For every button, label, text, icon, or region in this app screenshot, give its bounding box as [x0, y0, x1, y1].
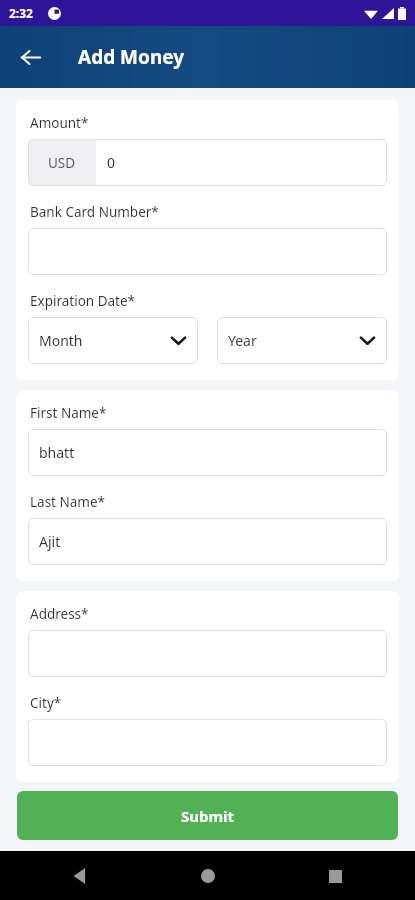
- button[interactable]: Submit: [17, 791, 398, 840]
- staticText: Add Money: [78, 44, 185, 70]
- button[interactable]: USD: [28, 139, 387, 186]
- button[interactable]: [28, 719, 387, 766]
- staticText: Last Name*: [30, 493, 106, 511]
- button[interactable]: bhatt: [28, 429, 387, 476]
- staticText: Amount*: [30, 114, 89, 132]
- staticText: USD: [48, 154, 76, 172]
- staticText: Expiration Date*: [30, 292, 136, 310]
- button[interactable]: Year: [217, 317, 387, 364]
- staticText: bhatt: [39, 443, 75, 462]
- staticText: City*: [30, 694, 62, 712]
- staticText: Ajit: [39, 532, 61, 551]
- button[interactable]: Back: [11, 38, 49, 76]
- button[interactable]: [28, 228, 387, 275]
- staticText: 0: [107, 153, 116, 172]
- staticText: Submit: [181, 806, 235, 826]
- button[interactable]: Home: [186, 854, 230, 898]
- staticText: Month: [39, 331, 83, 350]
- staticText: Bank Card Number*: [30, 203, 159, 221]
- staticText: 2:32: [9, 5, 33, 21]
- staticText: Address*: [30, 605, 89, 623]
- staticText: First Name*: [30, 404, 107, 422]
- button[interactable]: Back: [58, 854, 102, 898]
- button[interactable]: [28, 630, 387, 677]
- button[interactable]: Ajit: [28, 518, 387, 565]
- button[interactable]: Month: [28, 317, 198, 364]
- staticText: Year: [228, 331, 257, 350]
- button[interactable]: Recents: [313, 854, 357, 898]
